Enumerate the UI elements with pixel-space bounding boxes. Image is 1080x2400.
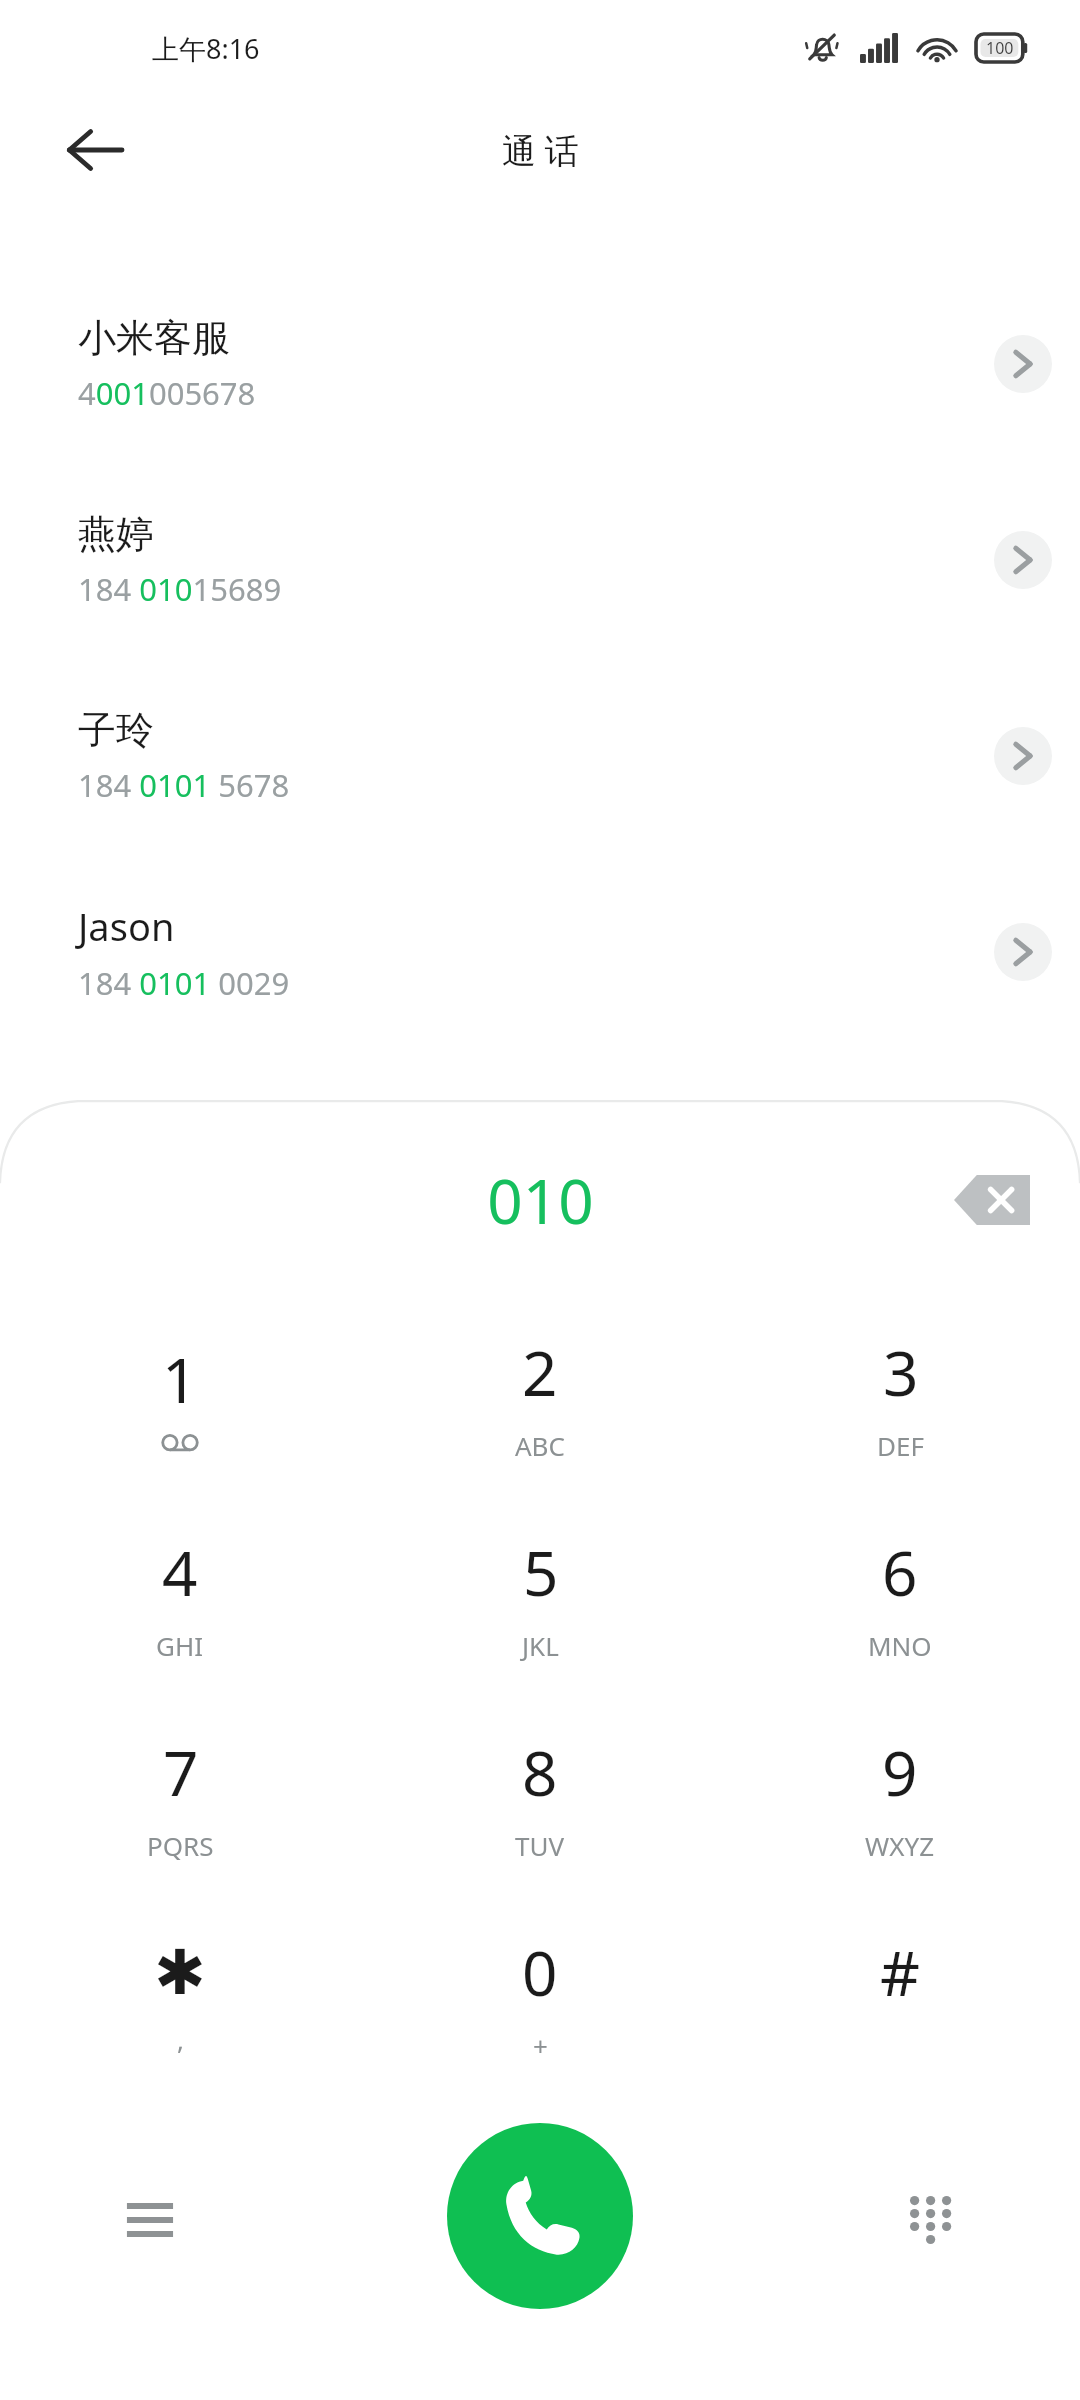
- staticText: 4: [162, 1530, 198, 1614]
- staticText: DEF: [877, 1428, 924, 1463]
- button[interactable]: Call: [447, 2123, 633, 2309]
- staticText: #: [880, 1930, 921, 2014]
- button[interactable]: Details: [994, 335, 1052, 393]
- staticText: TUV: [515, 1828, 565, 1863]
- staticText: 上午8:16: [152, 30, 260, 67]
- button[interactable]: 6: [720, 1496, 1080, 1696]
- button[interactable]: 1: [0, 1296, 360, 1496]
- staticText: ✱: [154, 1936, 206, 2008]
- button[interactable]: 0: [360, 1896, 720, 2096]
- button[interactable]: Details: [994, 531, 1052, 589]
- button[interactable]: 小米客服: [0, 266, 1080, 462]
- button[interactable]: Details: [994, 727, 1052, 785]
- button[interactable]: 子玲: [0, 658, 1080, 854]
- button[interactable]: Jason: [0, 854, 1080, 1050]
- button[interactable]: Backspace: [944, 1164, 1040, 1236]
- staticText: Jason: [78, 900, 175, 952]
- staticText: 010: [487, 1158, 594, 1242]
- button[interactable]: 9: [720, 1696, 1080, 1896]
- staticText: ,: [177, 2022, 184, 2057]
- staticText: 184 0101 5678: [78, 764, 290, 806]
- staticText: JKL: [522, 1628, 559, 1663]
- button[interactable]: Back: [52, 108, 136, 192]
- button[interactable]: Keypad: [884, 2174, 976, 2266]
- staticText: 燕婷: [78, 510, 154, 558]
- button[interactable]: #: [720, 1896, 1080, 2096]
- staticText: 0: [522, 1930, 558, 2014]
- staticText: PQRS: [147, 1828, 214, 1863]
- staticText: 小米客服: [78, 314, 230, 362]
- staticText: 184 01015689: [78, 568, 282, 610]
- button[interactable]: Details: [994, 923, 1052, 981]
- button[interactable]: 8: [360, 1696, 720, 1896]
- staticText: 5: [523, 1530, 559, 1614]
- staticText: 2: [522, 1330, 558, 1414]
- staticText: 3: [883, 1330, 919, 1414]
- staticText: 184 0101 0029: [78, 962, 290, 1004]
- staticText: 4001005678: [78, 372, 256, 414]
- button[interactable]: 2: [360, 1296, 720, 1496]
- staticText: 子玲: [78, 706, 154, 754]
- staticText: 7: [163, 1730, 199, 1814]
- button[interactable]: 4: [0, 1496, 360, 1696]
- button[interactable]: 5: [360, 1496, 720, 1696]
- staticText: 6: [882, 1530, 918, 1614]
- staticText: 100: [986, 37, 1014, 59]
- button[interactable]: 燕婷: [0, 462, 1080, 658]
- button[interactable]: Call log: [104, 2174, 196, 2266]
- button[interactable]: 7: [0, 1696, 360, 1896]
- staticText: MNO: [868, 1628, 932, 1663]
- staticText: GHI: [156, 1628, 204, 1663]
- button[interactable]: ✱: [0, 1896, 360, 2096]
- button[interactable]: 3: [720, 1296, 1080, 1496]
- staticText: WXYZ: [865, 1828, 935, 1863]
- staticText: ABC: [515, 1428, 565, 1463]
- staticText: 8: [522, 1730, 558, 1814]
- staticText: +: [533, 2028, 548, 2063]
- staticText: 9: [882, 1730, 918, 1814]
- staticText: 通 话: [502, 127, 579, 173]
- staticText: 1: [162, 1337, 198, 1421]
